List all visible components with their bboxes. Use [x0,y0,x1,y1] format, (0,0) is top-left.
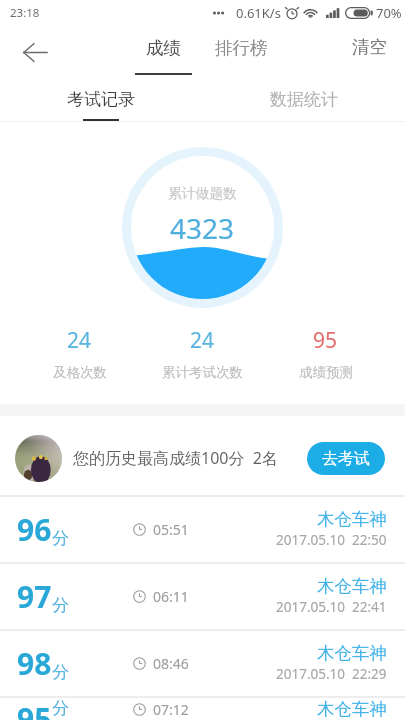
staticText: 累计考试次数 [162,364,243,381]
staticText: 0.61K/s [236,4,281,22]
button[interactable]: 97 [0,564,405,629]
staticText: 木仓车神 [317,698,387,717]
staticText: 木仓车神 [317,575,387,597]
staticText: 4323 [170,209,235,247]
button[interactable]: 98 [0,631,405,696]
button[interactable]: 24 [18,314,141,404]
button[interactable]: 24 [141,314,264,404]
button[interactable]: 96 [0,497,405,562]
staticText: 分 [52,528,69,549]
staticText: 成绩 [146,37,181,59]
staticText: 分 [52,662,69,683]
staticText: 及格次数 [53,364,107,381]
staticText: 08:46 [153,654,189,673]
button[interactable]: 去考试 [307,442,385,475]
staticText: 98 [17,643,52,684]
staticText: 24 [67,326,92,355]
staticText: 23:18 [10,5,40,21]
button[interactable]: 考试记录 [0,79,202,121]
staticText: 96 [17,509,52,550]
button[interactable]: 排行榜 [206,25,277,79]
staticText: 分 [52,698,69,719]
staticText: 97 [17,576,52,617]
staticText: 2017.05.10 22:50 [276,531,387,549]
button[interactable]: 95 [264,314,387,404]
staticText: 成绩预测 [299,364,353,381]
staticText: 05:51 [153,520,189,539]
staticText: 95 [17,698,52,720]
button[interactable]: 成绩 [128,25,199,79]
staticText: 07:12 [153,700,189,719]
staticText: 排行榜 [215,37,268,59]
button[interactable]: 95 [0,698,405,720]
staticText: 您的历史最高成绩100分 2名 [73,447,278,469]
button[interactable]: 数据统计 [202,79,405,121]
staticText: 2017.05.10 22:29 [276,665,387,683]
staticText: 木仓车神 [317,508,387,530]
button[interactable]: Back [0,28,62,77]
staticText: 木仓车神 [317,642,387,664]
staticText: 累计做题数 [168,185,237,202]
staticText: 分 [52,595,69,616]
button[interactable]: 清空 [331,25,405,69]
staticText: 清空 [352,36,387,58]
staticText: 去考试 [322,449,370,469]
staticText: 数据统计 [270,89,338,110]
staticText: 考试记录 [67,89,135,110]
staticText: 06:11 [153,587,189,606]
staticText: 2017.05.10 22:41 [276,598,387,616]
staticText: 70% [376,4,402,22]
staticText: 24 [190,326,215,355]
staticText: 95 [313,326,338,355]
